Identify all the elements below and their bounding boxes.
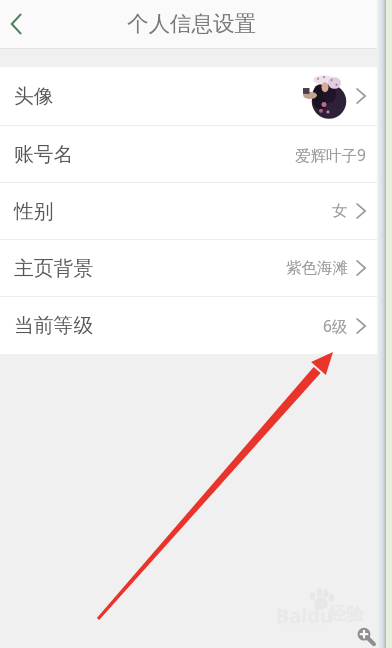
- staticText: 当前等级: [14, 313, 94, 338]
- staticText: 女: [332, 201, 348, 221]
- staticText: 性别: [14, 199, 54, 224]
- staticText: 个人信息设置: [127, 10, 256, 37]
- staticText: 头像: [14, 84, 54, 109]
- button[interactable]: 性别: [0, 183, 392, 239]
- button[interactable]: 主页背景: [0, 240, 392, 296]
- button[interactable]: Zoom in: [354, 620, 382, 648]
- staticText: 爱辉叶子9: [295, 144, 366, 165]
- staticText: 经验: [328, 603, 364, 626]
- staticText: 6级: [323, 315, 348, 336]
- staticText: 紫色海滩: [286, 258, 348, 278]
- button[interactable]: Back: [0, 0, 40, 48]
- staticText: Baidu: [276, 602, 333, 629]
- button[interactable]: 账号名: [0, 126, 392, 182]
- button[interactable]: 当前等级: [0, 297, 392, 354]
- staticText: 账号名: [14, 142, 74, 167]
- button[interactable]: 头像: [0, 67, 392, 125]
- staticText: 主页背景: [14, 256, 94, 281]
